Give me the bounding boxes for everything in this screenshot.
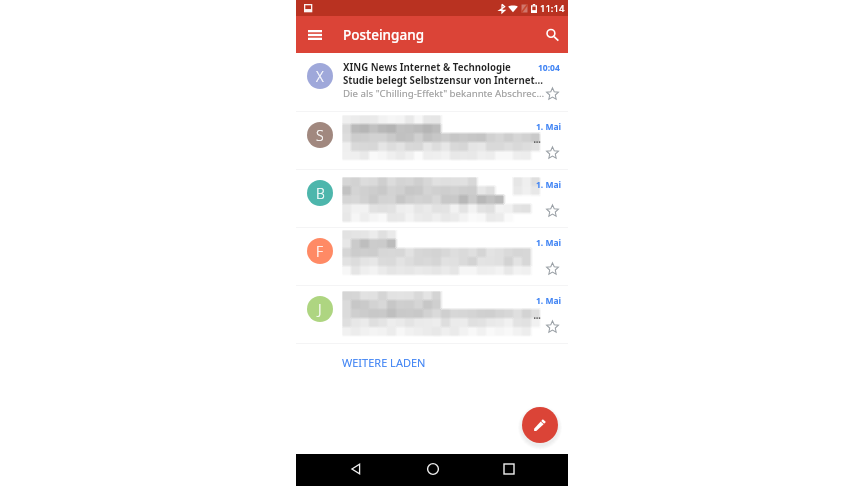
staticText: S — [316, 126, 324, 145]
staticText: B — [316, 184, 325, 203]
staticText: XING News Internet & Technologie — [343, 61, 511, 74]
staticText: 1. Mai — [536, 295, 562, 307]
staticText: F — [316, 242, 324, 261]
button[interactable]: WEITERE LADEN — [342, 355, 426, 370]
button[interactable]: J — [296, 286, 568, 343]
staticText: X — [316, 67, 324, 86]
staticText: WEITERE LADEN — [342, 355, 426, 370]
staticText: Posteingang — [343, 26, 424, 44]
staticText: 1. Mai — [536, 179, 562, 191]
button[interactable]: S — [296, 112, 568, 169]
staticText: 10:04 — [538, 62, 560, 74]
button[interactable]: B — [296, 170, 568, 227]
button[interactable]: Back — [342, 455, 370, 483]
button[interactable]: Compose — [522, 407, 558, 443]
button[interactable]: Home — [419, 455, 447, 483]
staticText: 1. Mai — [536, 121, 562, 133]
staticText: Studie belegt Selbstzensur von Internetn… — [343, 74, 546, 87]
staticText: 11:14 — [540, 2, 565, 15]
button[interactable]: F — [296, 228, 568, 285]
staticText: J — [318, 300, 322, 319]
staticText: 1. Mai — [536, 237, 562, 249]
button[interactable]: X — [296, 53, 568, 111]
staticText: Die als "Chilling-Effekt" bekannte Absch… — [343, 87, 546, 100]
button[interactable]: Recents — [495, 455, 523, 483]
button[interactable]: Menu — [301, 21, 329, 49]
button[interactable]: Search — [539, 22, 565, 48]
